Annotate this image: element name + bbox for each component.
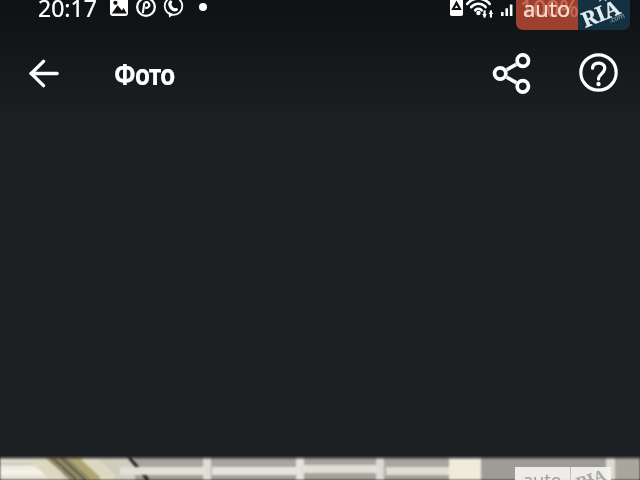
staticText: auto — [523, 468, 562, 480]
staticText: 20:17 — [38, 0, 97, 23]
staticText: RIA — [573, 464, 609, 480]
button[interactable]: Share — [485, 47, 537, 99]
staticText: auto — [523, 0, 571, 23]
staticText: 100% — [520, 0, 579, 23]
staticText: .com — [608, 10, 627, 26]
button[interactable]: Help — [572, 46, 624, 98]
staticText: Фото — [114, 55, 175, 93]
button[interactable]: Back — [19, 49, 67, 97]
staticText: RIA — [578, 0, 625, 30]
button[interactable]: Фото — [114, 55, 185, 93]
